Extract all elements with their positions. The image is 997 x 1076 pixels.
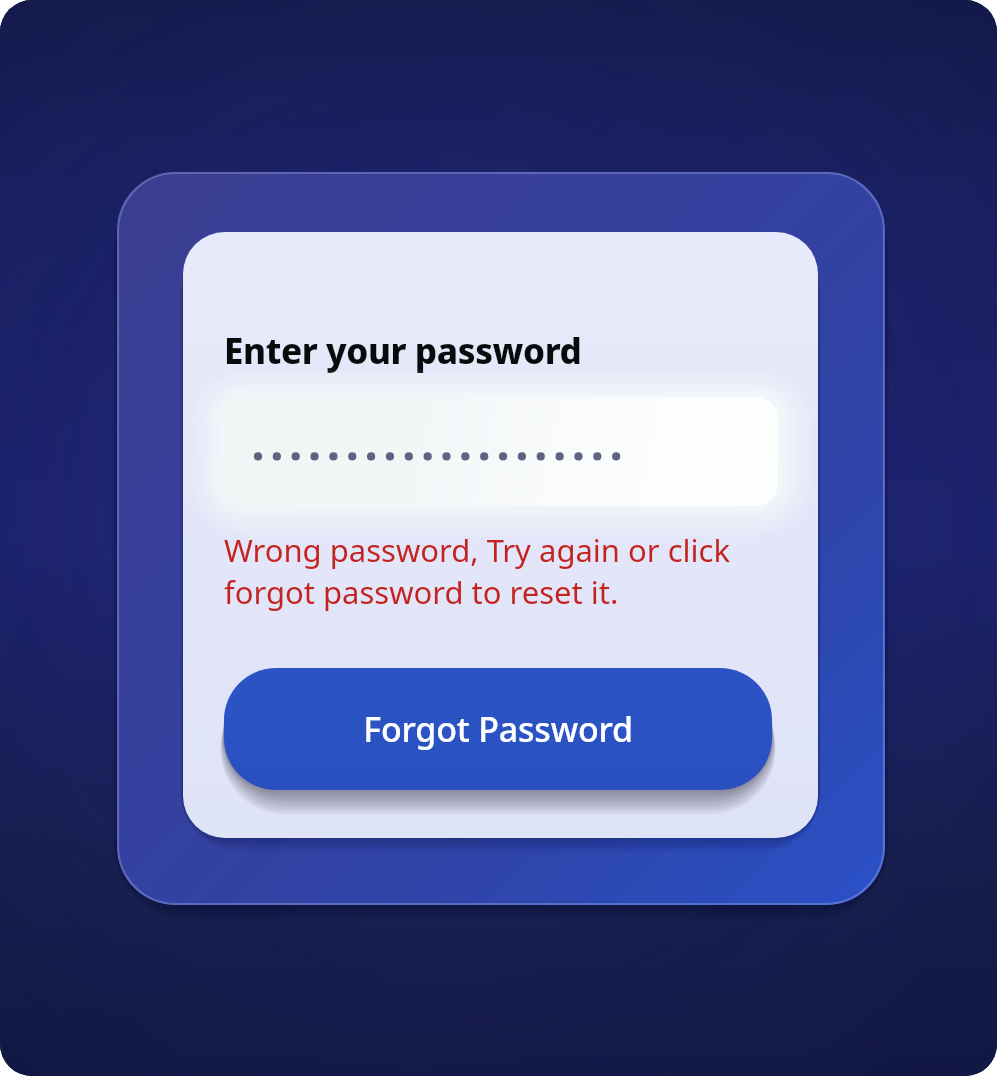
staticText: Forgot Password <box>363 706 633 752</box>
staticText: forgot password to reset it. <box>224 571 619 613</box>
button[interactable] <box>224 397 778 506</box>
button[interactable]: Forgot Password <box>224 668 772 790</box>
staticText: Enter your password <box>224 327 582 375</box>
staticText: Wrong password, Try again or click <box>224 529 730 571</box>
